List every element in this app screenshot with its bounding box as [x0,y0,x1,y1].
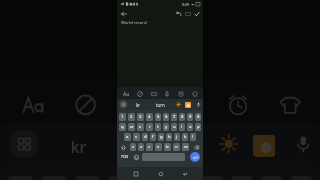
button[interactable]: Text format [11,83,52,123]
button[interactable]: o [187,123,193,131]
button[interactable]: Stickers [173,99,183,110]
button[interactable]: Back [178,167,191,180]
button[interactable]: y [163,123,169,131]
button[interactable]: Enter [190,152,200,162]
button[interactable]: 9 [260,176,283,180]
button[interactable]: b [164,143,171,151]
button[interactable]: 3 [74,176,100,180]
button[interactable]: Toolbar menu [0,123,45,164]
button[interactable]: 3 [137,113,144,121]
button[interactable]: Voice input [283,123,320,164]
staticText: 4 [115,179,127,180]
button[interactable]: Voice [164,83,205,123]
button[interactable]: Translate [246,123,283,164]
button[interactable]: Back [119,9,128,18]
staticText: 3 [139,114,142,120]
button[interactable]: Voice input [193,99,203,110]
button[interactable]: Text format [120,88,131,99]
button[interactable]: 2 [128,113,135,121]
button[interactable]: q [119,123,126,131]
staticText: turn [145,135,179,157]
button[interactable]: d [142,133,148,141]
staticText: 8 [181,114,184,120]
button[interactable]: n [173,143,180,151]
button[interactable]: 1 [7,176,33,180]
button[interactable]: g [158,133,164,141]
button[interactable]: Checklist [63,83,104,123]
button[interactable]: 0 [195,113,201,121]
button[interactable]: Recent apps [129,167,142,180]
button[interactable]: p [195,123,201,131]
button[interactable]: Translate [183,99,193,110]
button[interactable]: 0 [290,176,312,180]
button[interactable]: c [146,143,153,151]
button[interactable]: 7 [201,176,223,180]
button[interactable]: Shift [118,143,128,151]
button[interactable]: x [138,143,144,151]
button[interactable]: j [174,133,180,141]
button[interactable]: Keypad [115,83,156,123]
button[interactable]: Reminder [175,88,186,99]
staticText: 7 [173,114,176,120]
button[interactable]: 5 [155,113,161,121]
button[interactable]: r [146,123,153,131]
button[interactable]: 1 [119,113,126,121]
button[interactable]: w [128,123,135,131]
button[interactable]: v [155,143,162,151]
button[interactable]: Save [192,9,201,18]
button[interactable]: m [182,143,189,151]
button[interactable]: kr [45,123,115,164]
button[interactable]: 6 [163,113,169,121]
staticText: 5 [157,114,160,120]
button[interactable]: Backspace [191,143,202,151]
button[interactable]: Keypad [148,88,159,99]
button[interactable]: Stickers [208,123,246,164]
button[interactable]: 2 [41,176,67,180]
button[interactable]: l [190,133,196,141]
button[interactable]: turn [115,123,208,164]
button[interactable]: 8 [231,176,253,180]
button[interactable]: Home [154,167,167,180]
button[interactable]: h [166,133,172,141]
staticText: a [126,134,129,140]
staticText: q [121,124,124,130]
button[interactable]: t [155,123,161,131]
button[interactable]: Emoji [132,153,140,161]
button[interactable]: Voice [161,88,172,99]
staticText: ?123 [121,155,128,159]
button[interactable]: turn [148,99,173,110]
button[interactable]: Checklist [134,88,145,99]
button[interactable]: 9 [187,113,193,121]
button[interactable]: Redo [183,9,192,18]
button[interactable]: z [130,143,136,151]
button[interactable]: a [124,133,131,141]
button[interactable]: 4 [146,113,153,121]
button[interactable]: kr [129,99,148,110]
button[interactable]: Undo [174,9,183,18]
button[interactable]: Toolbar menu [117,99,129,110]
button[interactable]: f [150,133,156,141]
button[interactable]: Sticker [268,83,309,123]
staticText: e [139,124,142,130]
button[interactable]: ?123 [118,153,130,161]
staticText: turn [156,102,165,108]
button[interactable]: k [182,133,188,141]
button[interactable]: Reminder [216,83,257,123]
button[interactable]: 8 [179,113,185,121]
button[interactable]: u [171,123,177,131]
button[interactable]: e [137,123,144,131]
button[interactable]: 7 [171,113,177,121]
staticText: l [192,134,194,140]
button[interactable]: i [179,123,185,131]
button[interactable]: Sticker [189,88,200,99]
button[interactable]: 4 [108,176,134,180]
button[interactable]: s [133,133,140,141]
staticText: d [144,134,147,140]
